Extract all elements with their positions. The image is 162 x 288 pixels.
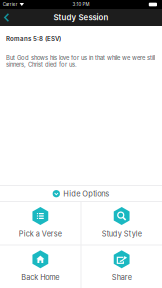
staticText: Study Session: [53, 13, 108, 22]
staticText: Pick a Verse: [19, 229, 62, 238]
button[interactable]: Back: [0, 9, 17, 26]
staticText: Romans 5:8 (ESV): [6, 35, 61, 42]
staticText: Study Style: [102, 229, 142, 238]
staticText: 3:10 PM: [72, 2, 89, 7]
button[interactable]: Pick a Verse: [0, 202, 81, 245]
button[interactable]: Study Style: [81, 202, 162, 245]
staticText: Back Home: [21, 273, 59, 282]
button[interactable]: Share: [81, 245, 162, 288]
staticText: Hide Options: [63, 189, 109, 198]
button[interactable]: Hide Options: [0, 186, 162, 201]
button[interactable]: Back Home: [0, 245, 81, 288]
staticText: Carrier: [3, 2, 18, 7]
staticText: Share: [112, 273, 132, 282]
staticText: But God shows his love for us in that wh…: [6, 54, 155, 68]
